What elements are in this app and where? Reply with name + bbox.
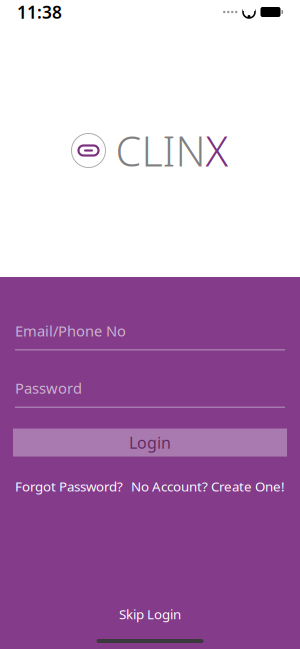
button[interactable]: Login [13, 429, 287, 457]
staticText: Forgot Password? [15, 478, 123, 495]
staticText: No Account? Create One! [131, 478, 285, 495]
staticText: 11:38 [17, 0, 62, 23]
staticText: Email/Phone No [15, 321, 126, 340]
staticText: Password [15, 378, 82, 398]
button[interactable]: Forgot Password? [15, 478, 123, 495]
button[interactable]: No Account? Create One! [131, 478, 285, 495]
button[interactable]: Skip Login [103, 599, 197, 629]
staticText: Skip Login [119, 605, 181, 623]
staticText: CLIN [115, 123, 205, 178]
staticText: Login [129, 432, 171, 453]
staticText: X [205, 123, 228, 178]
